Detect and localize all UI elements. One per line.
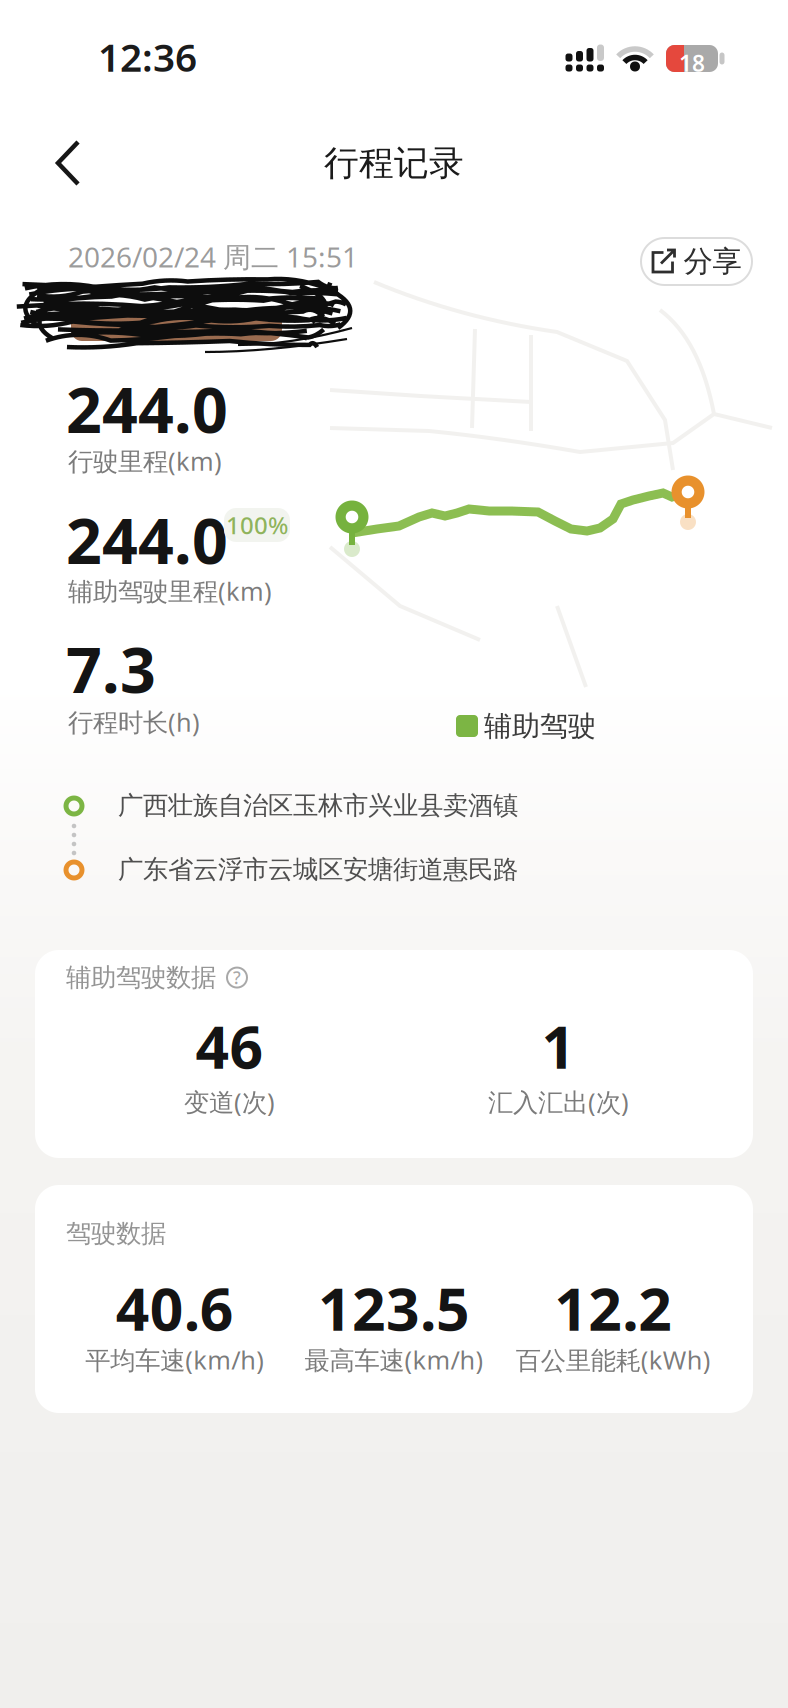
staticText: 123.5 [318,1269,470,1347]
staticText: 驾驶数据 [66,1218,166,1249]
staticText: 2026/02/24 周二 15:51 [68,238,358,275]
staticText: 18 [679,48,705,78]
staticText: 最高车速(km/h) [304,1343,483,1376]
staticText: 平均车速(km/h) [85,1343,264,1376]
staticText: 广东省云浮市云城区安塘街道惠民路 [118,854,518,885]
staticText: 100% [226,509,288,541]
staticText: 12.2 [554,1269,672,1347]
button[interactable]: 分享 [640,237,753,286]
staticText: 广西壮族自治区玉林市兴业县卖酒镇 [118,790,518,821]
staticText: 变道(次) [184,1085,275,1118]
staticText: 244.0 [66,367,228,450]
staticText: 40.6 [116,1269,234,1347]
staticText: 7.3 [66,627,156,710]
staticText: 分享 [683,243,741,279]
staticText: 百公里能耗(kWh) [516,1343,711,1376]
staticText: 244.0 [66,498,228,581]
staticText: 46 [195,1007,263,1085]
staticText: 辅助驾驶里程(km) [68,574,272,608]
button[interactable]: 辅助驾驶数据说明 [226,966,248,989]
staticText: 汇入汇出(次) [488,1085,629,1118]
staticText: 行程记录 [324,142,464,185]
staticText: 行驶里程(km) [68,444,222,478]
staticText: ? [233,966,241,989]
staticText: 12:36 [98,31,197,82]
staticText: 辅助驾驶 [484,709,596,743]
staticText: 辅助驾驶数据 [66,962,216,993]
staticText: 行程时长(h) [68,705,200,739]
staticText: 1 [541,1007,575,1085]
button[interactable]: Back [54,139,84,187]
